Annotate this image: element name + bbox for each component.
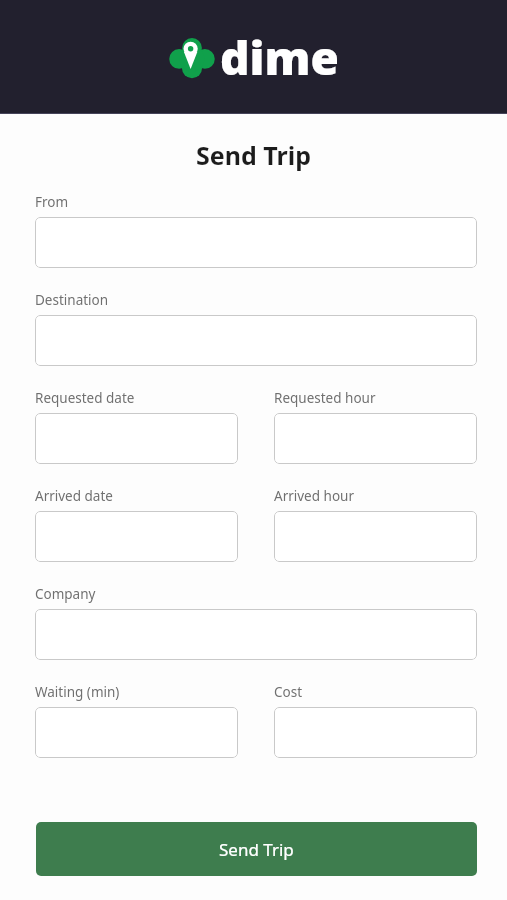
- staticText: Requested hour: [274, 389, 376, 407]
- staticText: Send Trip: [219, 838, 294, 861]
- staticText: Destination: [35, 291, 109, 309]
- staticText: Send Trip: [0, 138, 507, 172]
- button[interactable]: Send Trip: [36, 822, 477, 876]
- button[interactable]: Company: [35, 609, 477, 660]
- staticText: Arrived date: [35, 487, 113, 505]
- staticText: Waiting (min): [35, 683, 120, 701]
- staticText: Cost: [274, 683, 303, 701]
- button[interactable]: Arrived date: [35, 511, 238, 562]
- staticText: dime: [220, 26, 339, 89]
- other: dime logo: [169, 35, 215, 81]
- staticText: Arrived hour: [274, 487, 354, 505]
- button[interactable]: Requested date: [35, 413, 238, 464]
- button[interactable]: Cost: [274, 707, 477, 758]
- button[interactable]: Arrived hour: [274, 511, 477, 562]
- button[interactable]: From: [35, 217, 477, 268]
- button[interactable]: Destination: [35, 315, 477, 366]
- staticText: Company: [35, 585, 96, 603]
- button[interactable]: Requested hour: [274, 413, 477, 464]
- button[interactable]: Waiting (min): [35, 707, 238, 758]
- staticText: Requested date: [35, 389, 135, 407]
- staticText: From: [35, 193, 69, 211]
